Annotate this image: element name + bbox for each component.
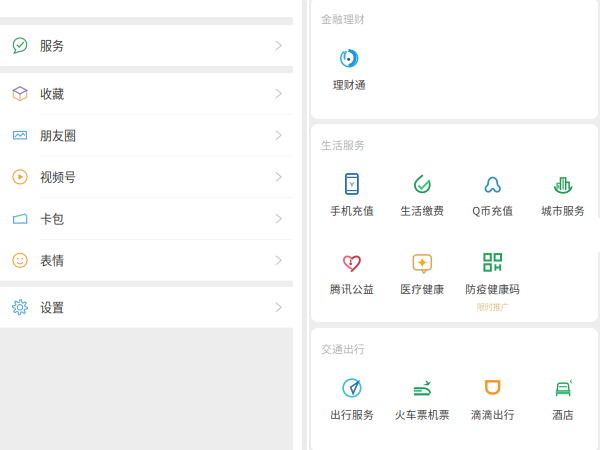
button[interactable]: Q币充值: [457, 173, 528, 218]
staticText: 酒店: [552, 406, 574, 422]
button[interactable]: 火车票机票: [387, 377, 457, 422]
staticText: 交通出行: [321, 341, 365, 356]
button[interactable]: 朋友圈: [0, 115, 293, 156]
button[interactable]: 防疫健康码: [457, 252, 528, 312]
button[interactable]: 表情: [0, 240, 293, 281]
staticText: 医疗健康: [400, 281, 444, 296]
button[interactable]: 滴滴出行: [457, 377, 528, 422]
staticText: 设置: [40, 299, 64, 316]
button[interactable]: 视频号: [0, 156, 293, 197]
staticText: 限时推广: [477, 300, 509, 312]
button[interactable]: 收藏: [0, 73, 293, 114]
staticText: 收藏: [40, 85, 64, 102]
staticText: Q币充值: [472, 202, 513, 218]
staticText: 生活缴费: [400, 202, 444, 218]
button[interactable]: 酒店: [528, 377, 598, 422]
staticText: 金融理财: [321, 11, 365, 26]
button[interactable]: 生活缴费: [387, 173, 457, 218]
staticText: 出行服务: [330, 406, 374, 422]
button[interactable]: 服务: [0, 25, 293, 66]
staticText: 腾讯公益: [330, 281, 374, 296]
staticText: 城市服务: [541, 202, 585, 218]
staticText: 理财通: [333, 76, 366, 92]
button[interactable]: 城市服务: [528, 173, 598, 218]
staticText: 手机充值: [330, 202, 374, 218]
staticText: 服务: [40, 37, 64, 54]
staticText: 生活服务: [321, 137, 365, 152]
staticText: 卡包: [40, 210, 64, 227]
button[interactable]: 腾讯公益: [317, 252, 387, 296]
button[interactable]: 出行服务: [317, 377, 387, 422]
button[interactable]: 卡包: [0, 198, 293, 239]
staticText: 防疫健康码: [465, 281, 520, 296]
button[interactable]: 手机充值: [317, 173, 387, 218]
staticText: 朋友圈: [40, 126, 76, 144]
staticText: 滴滴出行: [471, 406, 515, 422]
staticText: 视频号: [40, 168, 76, 186]
staticText: 火车票机票: [395, 406, 450, 422]
button[interactable]: 设置: [0, 287, 293, 328]
staticText: 表情: [40, 252, 64, 269]
button[interactable]: 理财通: [314, 47, 384, 92]
button[interactable]: 医疗健康: [387, 252, 457, 296]
